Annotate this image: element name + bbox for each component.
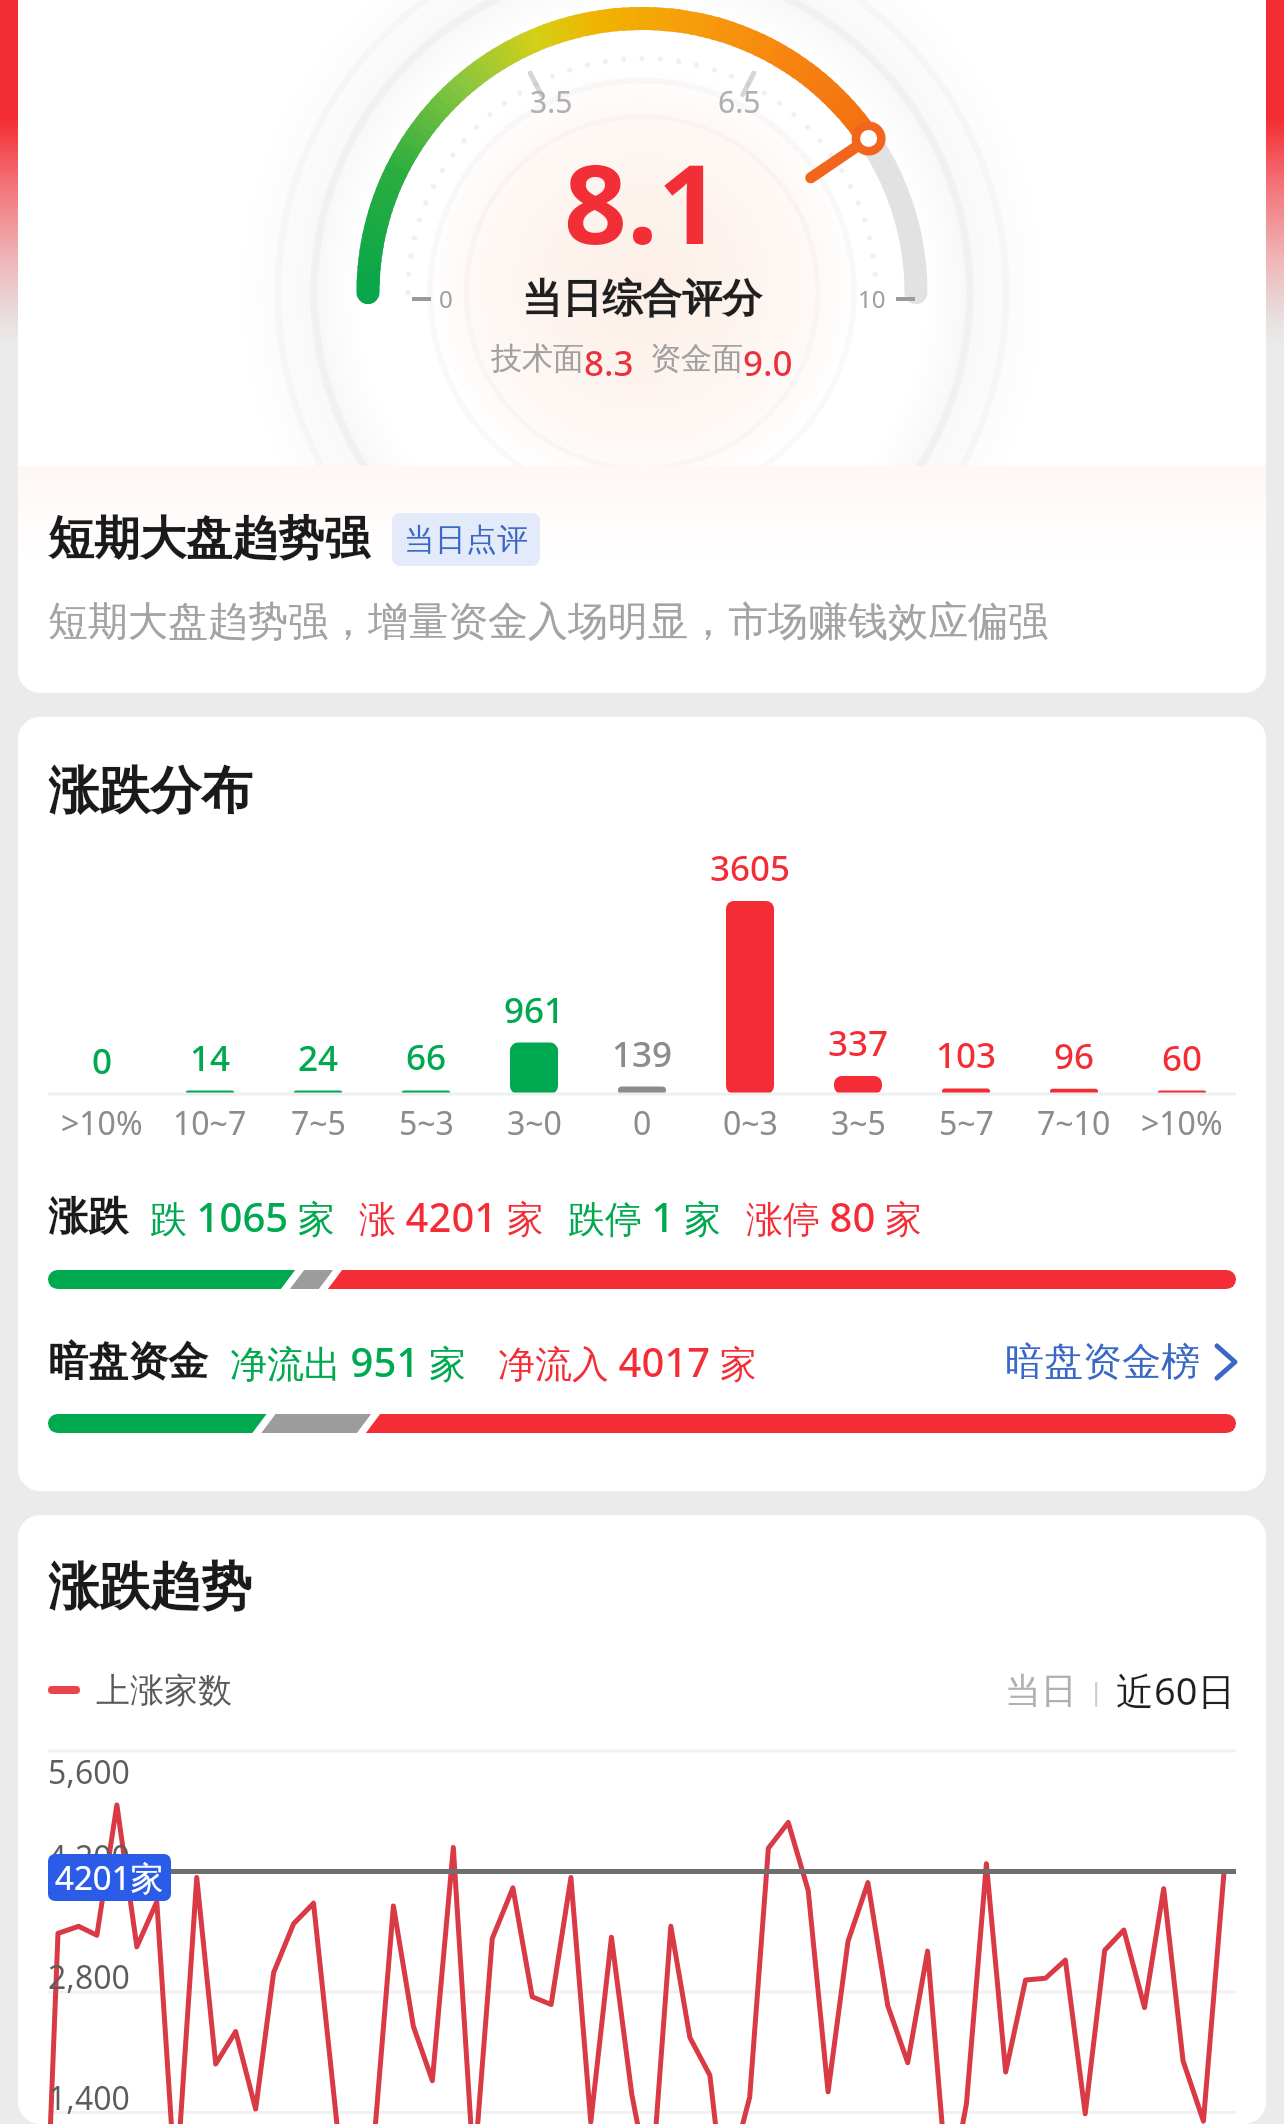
staticText: 139 [612, 1030, 673, 1078]
staticText: 涨跌分布 [48, 759, 252, 823]
staticText: 14 [190, 1034, 231, 1082]
staticText: 0~3 [723, 1101, 778, 1145]
staticText: 短期大盘趋势强，增量资金入场明显，市场赚钱效应偏强 [48, 596, 1048, 646]
staticText: 4,200 [48, 1835, 130, 1879]
staticText: 10 [858, 282, 886, 315]
button[interactable]: 暗盘资金榜 [1005, 1337, 1236, 1386]
staticText: 当日 [1005, 1668, 1077, 1713]
button[interactable]: 短期大盘趋势强 [18, 466, 1266, 693]
staticText: 4201家 [55, 1855, 164, 1900]
staticText: 7~10 [1037, 1101, 1111, 1145]
staticText: 净流入 4017 家 [498, 1334, 757, 1388]
staticText: >10% [61, 1101, 143, 1145]
staticText: 近60日 [1116, 1664, 1236, 1716]
staticText: 60 [1162, 1034, 1203, 1082]
staticText: 10~7 [173, 1101, 247, 1145]
staticText: 3~0 [507, 1101, 562, 1145]
staticText: 暗盘资金榜 [1005, 1337, 1200, 1386]
button[interactable]: 当日 [1005, 1668, 1077, 1713]
staticText: 涨跌趋势 [48, 1555, 252, 1619]
staticText: 8.1 [564, 126, 721, 276]
staticText: 337 [828, 1019, 889, 1067]
staticText: 0 [633, 1101, 652, 1145]
staticText: 短期大盘趋势强 [48, 510, 370, 568]
staticText: 1,400 [48, 2076, 130, 2120]
staticText: 6.5 [718, 81, 761, 122]
staticText: 涨停 80 家 [746, 1189, 922, 1243]
staticText: 5~7 [939, 1101, 994, 1145]
staticText: 涨跌 [48, 1191, 128, 1241]
staticText: 上涨家数 [96, 1669, 232, 1712]
staticText: 跌 1065 家 [150, 1189, 335, 1243]
staticText: 0 [92, 1037, 113, 1085]
staticText: 3.5 [530, 81, 573, 122]
staticText: 9.0 [743, 339, 793, 387]
staticText: 当日点评 [404, 520, 528, 559]
staticText: 净流出 951 家 [230, 1334, 466, 1388]
staticText: 涨 4201 家 [359, 1189, 544, 1243]
staticText: 2,800 [48, 1955, 130, 1999]
staticText: >10% [1141, 1101, 1223, 1145]
staticText: 暗盘资金 [48, 1336, 208, 1386]
button[interactable]: 当日综合评分 8.1 [18, 0, 1266, 466]
staticText: 0 [439, 282, 453, 315]
staticText: 7~5 [291, 1101, 346, 1145]
staticText: 961 [504, 986, 565, 1034]
staticText: 5~3 [399, 1101, 454, 1145]
staticText: 96 [1054, 1032, 1095, 1080]
staticText: 5,600 [48, 1750, 130, 1794]
staticText: 跌停 1 家 [568, 1189, 722, 1243]
staticText: 当日综合评分 [522, 273, 762, 323]
staticText: 3605 [710, 844, 791, 892]
staticText: 资金面 [650, 339, 743, 378]
staticText: | [1089, 1673, 1104, 1708]
staticText: 103 [936, 1031, 997, 1079]
staticText: 技术面 [491, 339, 584, 378]
staticText: 8.3 [584, 339, 634, 387]
staticText: 3~5 [831, 1101, 886, 1145]
button[interactable]: 近60日 [1116, 1664, 1236, 1716]
staticText: 24 [298, 1034, 339, 1082]
staticText: 66 [406, 1033, 447, 1081]
